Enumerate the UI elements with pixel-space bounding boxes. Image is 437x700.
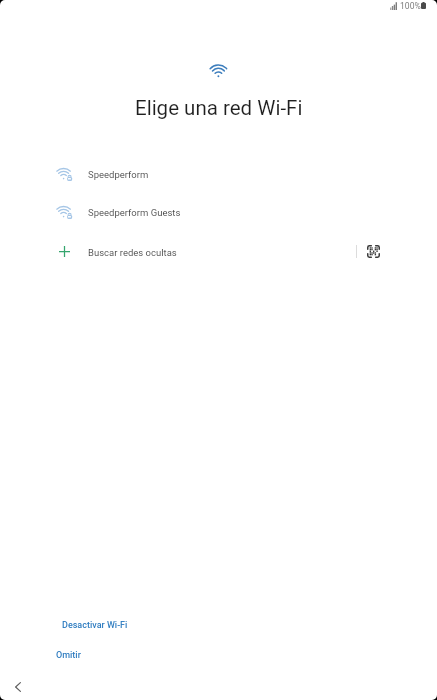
button[interactable]: Atrás <box>2 670 34 698</box>
button[interactable]: Speedperform <box>40 161 340 193</box>
button[interactable]: Omitir <box>50 645 86 665</box>
staticText: Desactivar Wi-Fi <box>62 620 128 631</box>
button[interactable]: Desactivar Wi-Fi <box>56 615 132 635</box>
staticText: Speedperform Guests <box>88 207 181 218</box>
button[interactable]: Speedperform Guests <box>40 199 340 231</box>
staticText: Speedperform <box>88 169 149 180</box>
staticText: Buscar redes ocultas <box>88 247 177 258</box>
button[interactable]: Buscar redes ocultas <box>40 238 340 270</box>
staticText: 100% <box>400 1 421 11</box>
button[interactable]: Escanear código QR <box>360 238 387 265</box>
staticText: Elige una red Wi-Fi <box>135 96 303 120</box>
staticText: Omitir <box>56 650 81 661</box>
